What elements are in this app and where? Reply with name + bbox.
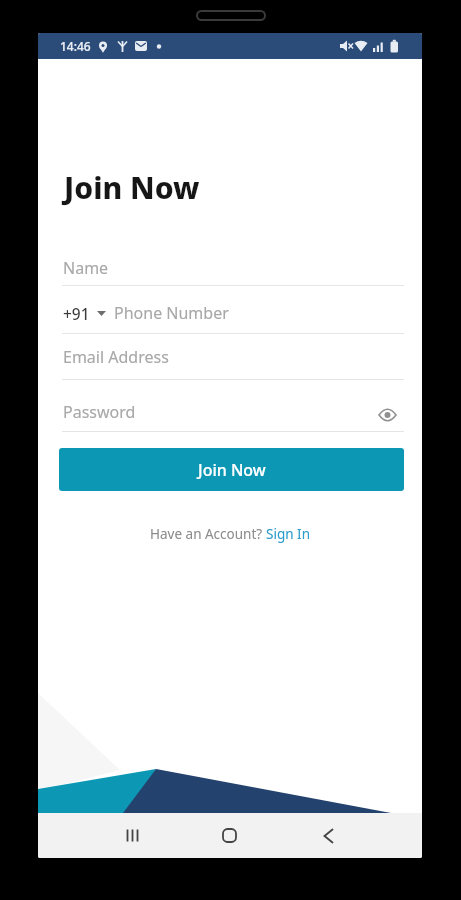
staticText: Sign In <box>266 525 310 543</box>
staticText: Join Now <box>64 167 200 208</box>
button[interactable] <box>124 296 404 334</box>
button[interactable]: Sign In <box>266 525 310 543</box>
staticText: Have an Account? <box>150 525 266 543</box>
button[interactable] <box>62 251 404 286</box>
staticText: Phone Number <box>114 302 229 324</box>
button[interactable]: Join Now <box>59 448 404 491</box>
staticText: +91 <box>63 303 90 324</box>
button[interactable] <box>306 813 351 858</box>
button[interactable] <box>62 341 404 380</box>
staticText: Join Now <box>198 459 266 481</box>
button[interactable] <box>374 401 402 429</box>
button[interactable] <box>207 813 252 858</box>
staticText: Email Address <box>63 346 169 368</box>
staticText: Password <box>63 401 136 423</box>
staticText: 14:46 <box>60 38 91 54</box>
button[interactable] <box>110 813 155 858</box>
staticText: Name <box>63 257 109 279</box>
button[interactable] <box>62 296 120 334</box>
button[interactable] <box>62 396 372 432</box>
